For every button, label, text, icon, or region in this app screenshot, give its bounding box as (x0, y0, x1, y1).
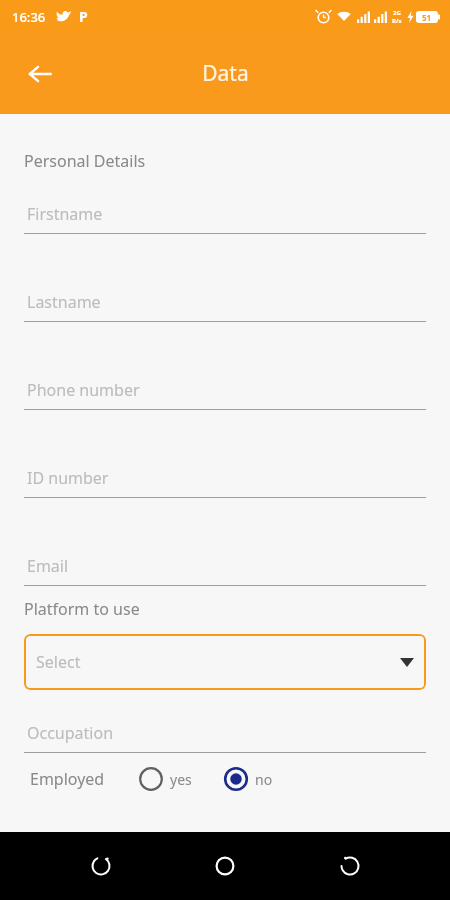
button[interactable]: no (224, 767, 273, 791)
staticText: Employed (30, 768, 105, 790)
staticText: Firstname (27, 203, 103, 225)
button[interactable]: ID number (0, 467, 450, 498)
staticText: Personal Details (24, 150, 146, 172)
button[interactable]: Select (24, 634, 426, 690)
button[interactable]: Back (18, 52, 62, 96)
staticText: Select (36, 651, 81, 673)
staticText: Platform to use (24, 598, 140, 620)
staticText: P (79, 7, 88, 26)
staticText: no (255, 770, 273, 789)
staticText: 16:36 (12, 8, 46, 26)
staticText: 51 (422, 12, 432, 23)
button[interactable]: Email (0, 555, 450, 586)
staticText: B/s (392, 17, 402, 25)
button[interactable]: Recents (77, 842, 125, 890)
staticText: Lastname (27, 291, 101, 313)
staticText: Occupation (27, 722, 114, 744)
button[interactable]: Firstname (0, 203, 450, 234)
button[interactable]: Home (201, 842, 249, 890)
staticText: Email (27, 555, 69, 577)
staticText: 2G (393, 9, 401, 17)
button[interactable]: Back (326, 842, 374, 890)
button[interactable]: Occupation (0, 722, 450, 753)
button[interactable]: yes (139, 767, 192, 791)
staticText: Data (202, 59, 249, 88)
button[interactable]: Phone number (0, 379, 450, 410)
staticText: yes (170, 770, 192, 789)
staticText: ID number (27, 467, 109, 489)
button[interactable]: Lastname (0, 291, 450, 322)
staticText: Phone number (27, 379, 140, 401)
